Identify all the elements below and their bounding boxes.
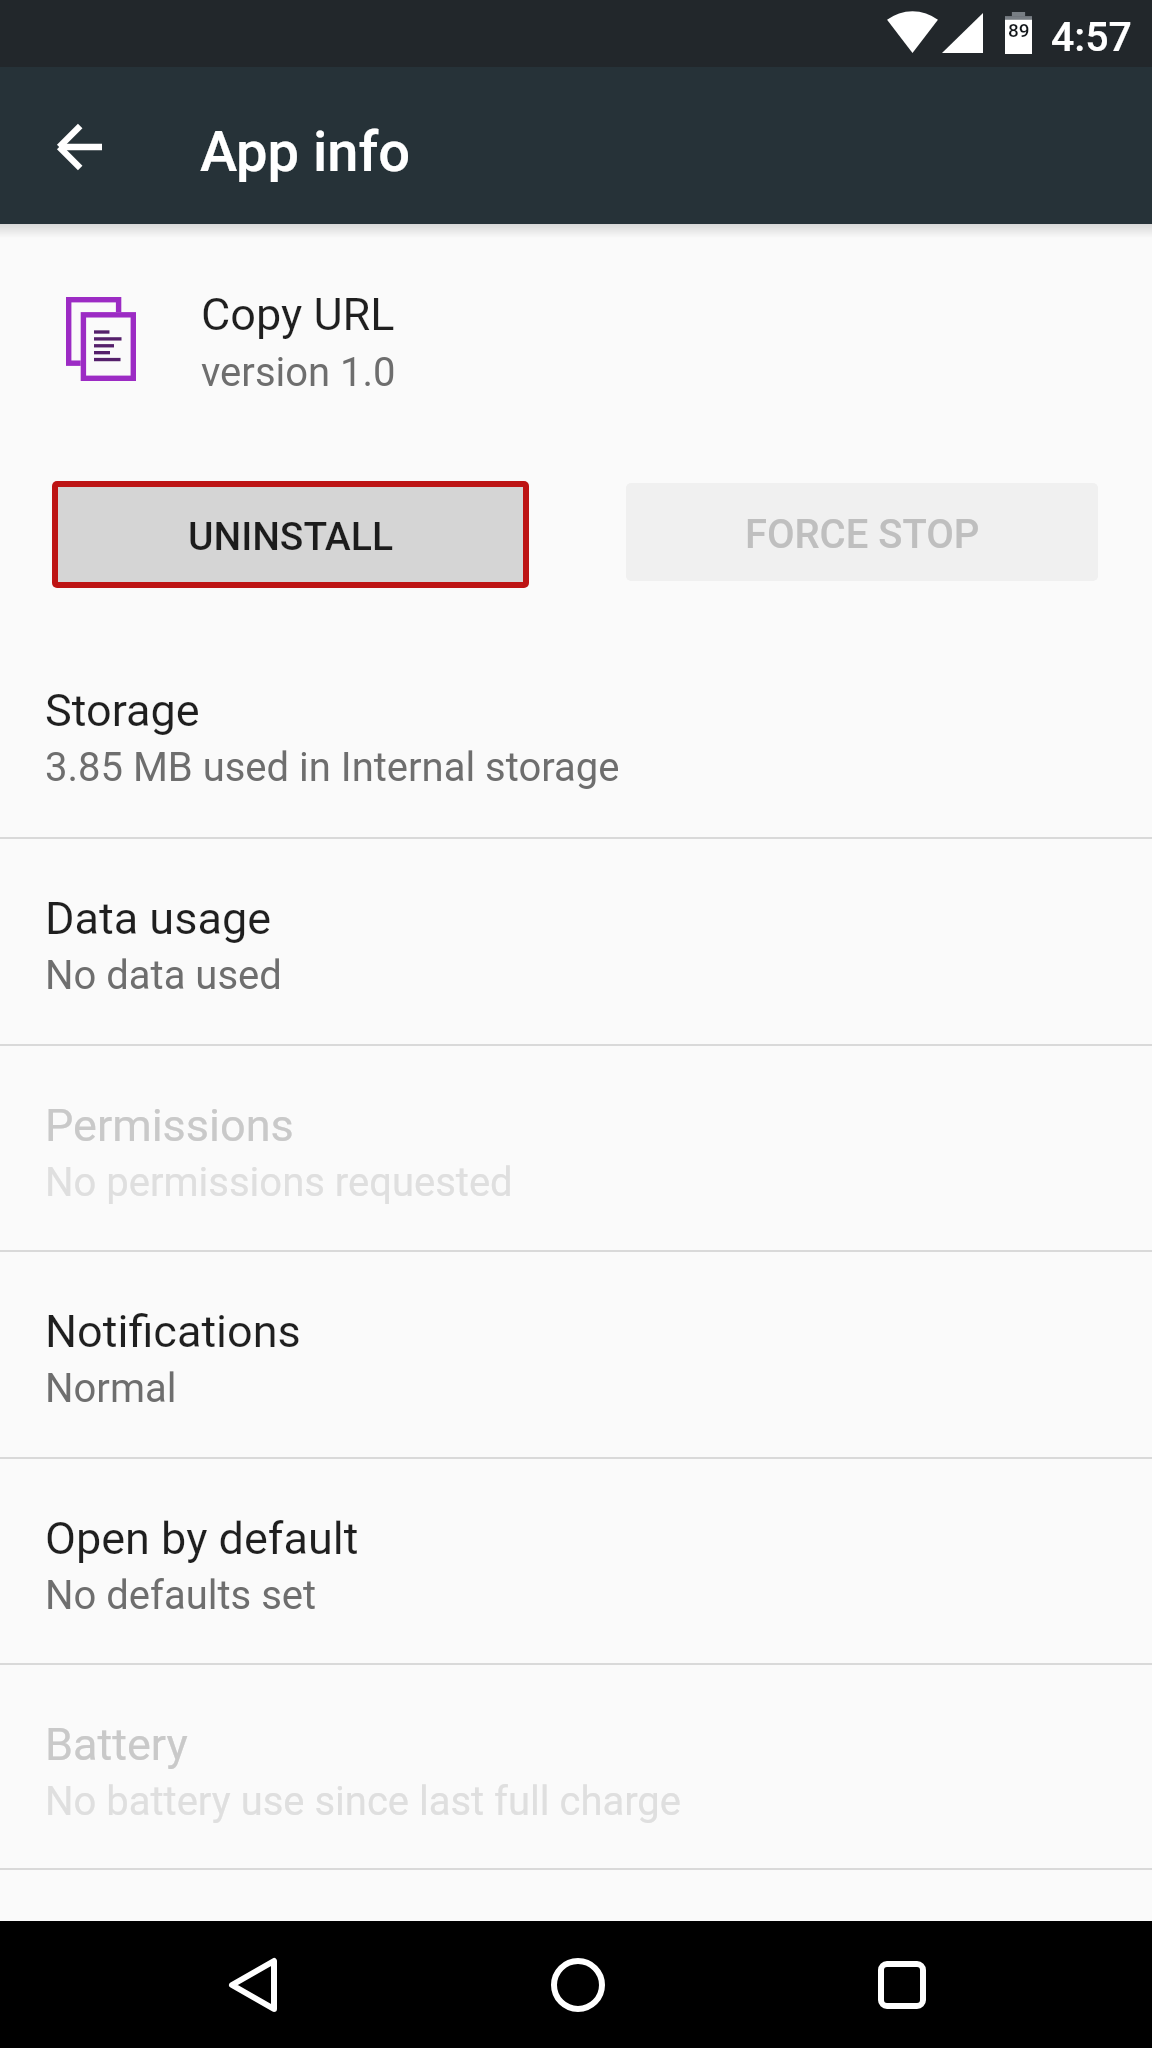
staticText: No permissions requested xyxy=(45,1159,513,1206)
button[interactable]: FORCE STOP xyxy=(626,483,1098,581)
staticText: UNINSTALL xyxy=(188,514,394,560)
staticText: No defaults set xyxy=(45,1572,317,1619)
staticText: No data used xyxy=(45,952,282,999)
staticText: Notifications xyxy=(45,1305,301,1358)
button[interactable]: UNINSTALL xyxy=(58,487,523,582)
staticText: No battery use since last full charge xyxy=(45,1778,682,1825)
button[interactable]: Battery xyxy=(0,1665,1152,1868)
button[interactable]: Permissions xyxy=(0,1046,1152,1250)
button[interactable]: Open by default xyxy=(0,1459,1152,1663)
staticText: Battery xyxy=(45,1718,188,1771)
staticText: Storage xyxy=(45,684,200,737)
button[interactable]: Back xyxy=(183,1921,323,2048)
staticText: 4:57 xyxy=(1051,13,1132,61)
button[interactable]: Storage xyxy=(0,631,1152,837)
staticText: 89 xyxy=(1008,19,1030,41)
staticText: Data usage xyxy=(45,892,272,945)
button[interactable]: Data usage xyxy=(0,839,1152,1044)
staticText: Normal xyxy=(45,1365,177,1412)
staticText: Copy URL xyxy=(201,288,395,341)
button[interactable]: Home xyxy=(508,1921,648,2048)
button[interactable]: Navigate up xyxy=(35,102,123,190)
button[interactable]: Recent apps xyxy=(832,1921,972,2048)
staticText: App info xyxy=(200,119,411,185)
staticText: version 1.0 xyxy=(201,349,396,396)
button[interactable]: Notifications xyxy=(0,1252,1152,1457)
staticText: FORCE STOP xyxy=(745,511,980,558)
staticText: Open by default xyxy=(45,1512,359,1565)
staticText: Permissions xyxy=(45,1099,294,1152)
staticText: 3.85 MB used in Internal storage xyxy=(45,744,620,791)
